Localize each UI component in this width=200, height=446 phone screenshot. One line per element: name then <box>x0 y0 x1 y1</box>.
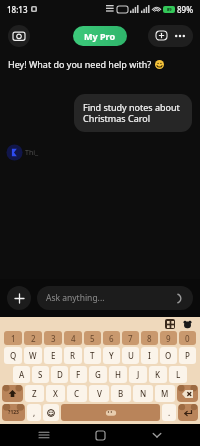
button[interactable]: M <box>155 385 175 402</box>
button[interactable]: E <box>44 347 62 364</box>
button[interactable]: Emoji <box>43 404 59 421</box>
button[interactable]: K <box>149 366 167 383</box>
button[interactable]: Z <box>25 385 44 402</box>
button[interactable]: 0 <box>179 331 196 345</box>
staticText: , <box>33 407 36 418</box>
button[interactable]: 6 <box>103 331 120 345</box>
staticText: A <box>19 369 25 380</box>
staticText: I <box>148 350 151 361</box>
staticText: O <box>165 350 172 361</box>
button[interactable]: Home <box>87 424 113 446</box>
button[interactable]: Add attachment <box>7 286 31 310</box>
button[interactable]: Q <box>4 347 22 364</box>
button[interactable]: O <box>160 347 177 364</box>
staticText: K <box>155 369 161 380</box>
button[interactable]: 8 <box>141 331 158 345</box>
staticText: C <box>74 388 80 399</box>
staticText: Z <box>32 388 37 399</box>
staticText: 9 <box>166 333 171 344</box>
staticText: G <box>95 369 101 380</box>
button[interactable]: N <box>133 385 153 402</box>
staticText: H <box>115 369 121 380</box>
button[interactable]: A <box>13 366 30 383</box>
button[interactable]: 2 <box>24 331 42 345</box>
button[interactable]: Backspace <box>177 385 198 402</box>
button[interactable]: U <box>122 347 139 364</box>
button[interactable]: Enter <box>178 404 198 421</box>
staticText: U <box>128 350 134 361</box>
button[interactable]: Y <box>103 347 120 364</box>
button[interactable]: Recents <box>31 424 57 446</box>
button[interactable]: 9 <box>160 331 177 345</box>
button[interactable]: . <box>162 404 176 421</box>
button[interactable]: L <box>169 366 187 383</box>
staticText: J <box>137 369 140 380</box>
button[interactable]: Shift <box>2 385 23 402</box>
staticText: Q <box>10 350 17 361</box>
staticText: Y <box>109 350 114 361</box>
button[interactable]: I <box>141 347 158 364</box>
staticText: 4 <box>71 333 76 344</box>
staticText: M <box>161 388 169 399</box>
button[interactable]: 3 <box>44 331 62 345</box>
button[interactable]: Find study notes about Christmas Carol <box>74 94 192 132</box>
button[interactable]: Keyboard theme <box>182 319 192 329</box>
button[interactable]: 5 <box>84 331 101 345</box>
staticText: L <box>176 369 181 380</box>
staticText: T <box>90 350 95 361</box>
staticText: ?123 <box>8 409 19 416</box>
button[interactable]: R <box>64 347 82 364</box>
staticText: Find study notes about Christmas Carol <box>83 101 183 125</box>
button[interactable]: Back <box>144 424 170 446</box>
button[interactable]: More options <box>172 28 188 44</box>
button[interactable]: C <box>67 385 87 402</box>
staticText: D <box>57 369 63 380</box>
button[interactable]: Stickers <box>165 319 175 329</box>
button[interactable]: 1 <box>4 331 22 345</box>
staticText: 0 <box>185 333 190 344</box>
button[interactable]: V <box>89 385 109 402</box>
staticText: X <box>53 388 58 399</box>
button[interactable]: H <box>109 366 127 383</box>
staticText: B <box>118 388 124 399</box>
staticText: R <box>70 350 76 361</box>
staticText: 3 <box>51 333 56 344</box>
button[interactable]: Camera <box>8 25 30 47</box>
staticText: Thi_ <box>25 148 39 158</box>
button[interactable]: , <box>27 404 41 421</box>
staticText: Ask anything... <box>46 292 105 304</box>
staticText: 89 <box>167 7 172 12</box>
staticText: 5 <box>90 333 95 344</box>
staticText: E <box>51 350 56 361</box>
button[interactable]: S <box>32 366 49 383</box>
staticText: 18:13 <box>7 4 28 15</box>
button[interactable]: X <box>46 385 65 402</box>
staticText: N <box>140 388 147 399</box>
staticText: 89% <box>177 4 193 15</box>
button[interactable]: T <box>84 347 101 364</box>
staticText: 2 <box>31 333 36 344</box>
button[interactable]: D <box>51 366 68 383</box>
button[interactable]: F <box>70 366 87 383</box>
button[interactable]: J <box>129 366 147 383</box>
staticText: My Pro <box>84 30 116 42</box>
staticText: 7 <box>128 333 133 344</box>
button[interactable]: W <box>24 347 42 364</box>
button[interactable]: Symbols <box>2 404 25 421</box>
button[interactable]: My Pro <box>73 26 127 46</box>
button[interactable]: Space <box>61 404 160 421</box>
staticText: 8 <box>147 333 152 344</box>
button[interactable]: P <box>179 347 196 364</box>
button[interactable]: G <box>89 366 107 383</box>
staticText: Hey! What do you need help with? <box>8 58 152 70</box>
button[interactable]: B <box>111 385 131 402</box>
staticText: 6 <box>109 333 114 344</box>
button[interactable]: 4 <box>64 331 82 345</box>
staticText: P <box>185 350 190 361</box>
staticText: . <box>168 407 171 418</box>
button[interactable]: 7 <box>122 331 139 345</box>
staticText: V <box>97 388 102 399</box>
button[interactable]: New chat <box>153 28 169 44</box>
staticText: S <box>38 369 43 380</box>
button[interactable]: Ask anything... <box>37 286 193 310</box>
